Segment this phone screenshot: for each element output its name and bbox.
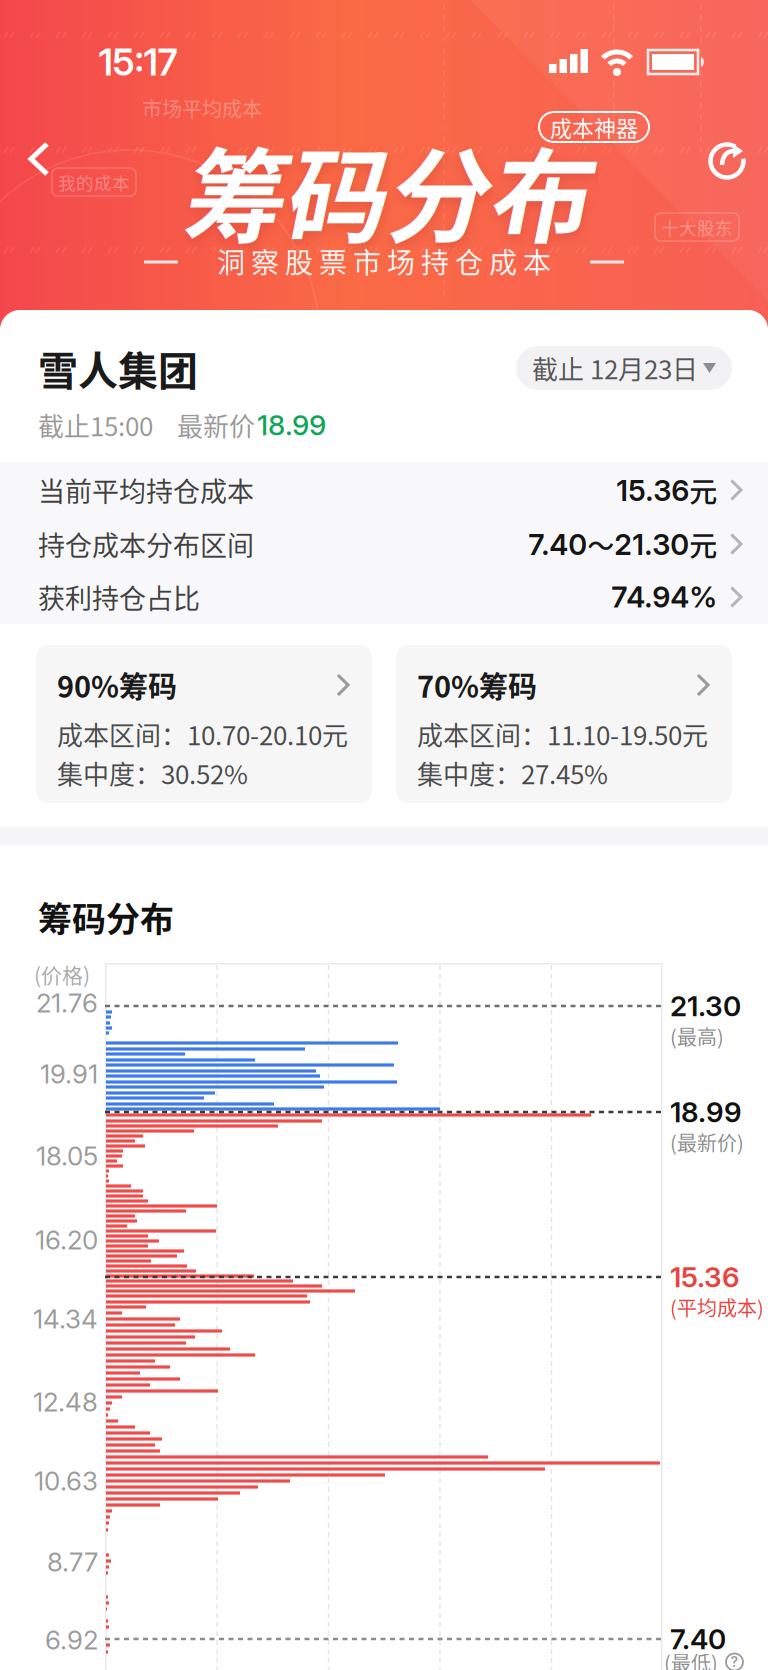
staticText: 筹码分布 [180, 116, 588, 264]
staticText: 成本区间：10.70-20.10元 [57, 715, 348, 753]
staticText: 19.91 [40, 1058, 98, 1090]
staticText: (价格) [34, 959, 90, 989]
staticText: (平均成本) [670, 1292, 764, 1321]
staticText: 14.34 [33, 1303, 98, 1335]
staticText: 当前平均持仓成本 [38, 470, 254, 510]
staticText: (最新价) [670, 1127, 744, 1156]
staticText: 18.99 [257, 408, 326, 442]
staticText: 10.63 [34, 1465, 98, 1497]
staticText: 21.30 [670, 989, 741, 1023]
staticText: 18.99 [670, 1095, 742, 1129]
staticText: 最新价 [177, 406, 255, 444]
staticText: 截止 12月23日 [532, 349, 698, 387]
staticText: 十大股东 [661, 214, 733, 240]
button[interactable]: 刷新 [706, 138, 750, 182]
staticText: 15:17 [98, 40, 177, 84]
staticText: 6.92 [45, 1624, 98, 1656]
staticText: 雪人集团 [38, 339, 198, 397]
staticText: 18.05 [36, 1140, 98, 1172]
staticText: 洞 察 股 票 市 场 持 仓 成 本 [217, 241, 551, 281]
staticText: 15.36元 [616, 470, 717, 510]
staticText: 我的成本 [58, 169, 130, 195]
staticText: 持仓成本分布区间 [38, 524, 254, 564]
button[interactable]: 截止 12月23日 [516, 346, 732, 390]
staticText: 截止15:00 [38, 406, 153, 444]
button[interactable]: 70%筹码 [396, 645, 732, 803]
staticText: 7.40 [670, 1622, 726, 1656]
staticText: 8.77 [47, 1546, 98, 1578]
button[interactable]: 90%筹码 [36, 645, 372, 803]
staticText: 成本神器 [550, 111, 638, 143]
staticText: (最高) [670, 1021, 724, 1050]
button[interactable]: 帮助 [725, 1652, 744, 1670]
staticText: 90%筹码 [57, 664, 177, 706]
button[interactable]: 当前平均持仓成本 [0, 463, 768, 517]
staticText: 7.40～21.30元 [528, 524, 717, 564]
staticText: 集中度：27.45% [417, 754, 608, 792]
staticText: 21.76 [36, 987, 98, 1019]
staticText: (最低) [664, 1647, 718, 1670]
staticText: 16.20 [35, 1224, 98, 1256]
staticText: 集中度：30.52% [57, 754, 248, 792]
button[interactable]: 持仓成本分布区间 [0, 517, 768, 571]
staticText: 筹码分布 [38, 892, 174, 942]
staticText: 成本区间：11.10-19.50元 [417, 715, 708, 753]
staticText: 70%筹码 [417, 664, 537, 706]
button[interactable]: 返回 [28, 142, 50, 178]
button[interactable]: 获利持仓占比 [0, 570, 768, 624]
staticText: 74.94% [611, 579, 717, 615]
staticText: 获利持仓占比 [38, 577, 200, 617]
staticText: 15.36 [670, 1260, 740, 1294]
staticText: 12.48 [33, 1386, 98, 1418]
staticText: 市场平均成本 [142, 93, 262, 122]
staticText: ? [730, 1653, 738, 1670]
